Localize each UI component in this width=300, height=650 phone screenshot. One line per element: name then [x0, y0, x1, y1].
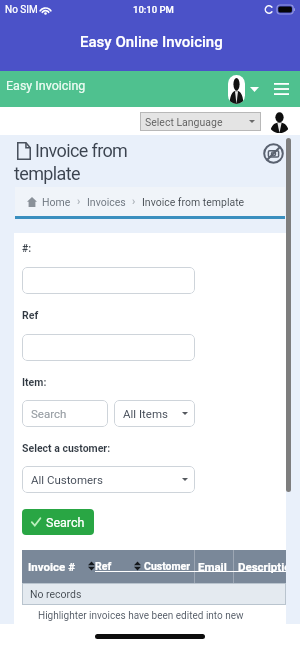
button[interactable]: Search — [22, 400, 108, 427]
staticText: Invoices — [87, 196, 126, 208]
staticText: › — [132, 195, 136, 208]
staticText: template — [14, 163, 80, 184]
staticText: Email — [198, 560, 227, 573]
button[interactable]: Account — [228, 75, 259, 104]
staticText: All Customers — [31, 473, 103, 486]
staticText: Search — [46, 515, 85, 530]
staticText: Search — [31, 407, 67, 420]
button[interactable]: Menu — [271, 79, 291, 99]
staticText: 10:10 PM — [133, 4, 174, 15]
staticText: › — [77, 195, 81, 208]
staticText: All Items — [123, 407, 168, 420]
staticText: Customer — [144, 560, 191, 572]
staticText: Select a customer: — [22, 442, 111, 454]
staticText: Easy Invoicing — [6, 78, 86, 93]
staticText: Invoice from template — [142, 196, 245, 208]
staticText: Ref — [22, 309, 39, 321]
staticText: #: — [22, 242, 32, 254]
staticText: Highlighter invoices have been edited in… — [38, 610, 244, 622]
button[interactable]: Select Language — [140, 112, 261, 131]
staticText: No SIM — [5, 4, 38, 16]
staticText: Invoice # — [28, 560, 76, 573]
staticText: No records — [30, 588, 82, 600]
staticText: Ref — [95, 560, 112, 572]
button[interactable]: All Customers — [22, 466, 195, 493]
staticText: Select Language — [145, 116, 223, 128]
button[interactable]: Text field — [22, 334, 195, 361]
staticText: Easy Online Invoicing — [80, 33, 223, 51]
button[interactable]: Text field — [22, 267, 195, 294]
staticText: Home — [42, 196, 71, 208]
staticText: Description — [238, 560, 286, 573]
button[interactable]: All Items — [114, 400, 195, 427]
staticText: Invoice from — [35, 140, 128, 161]
button[interactable]: No camera — [262, 142, 284, 164]
button[interactable]: Search — [22, 509, 94, 535]
staticText: Item: — [22, 376, 47, 388]
